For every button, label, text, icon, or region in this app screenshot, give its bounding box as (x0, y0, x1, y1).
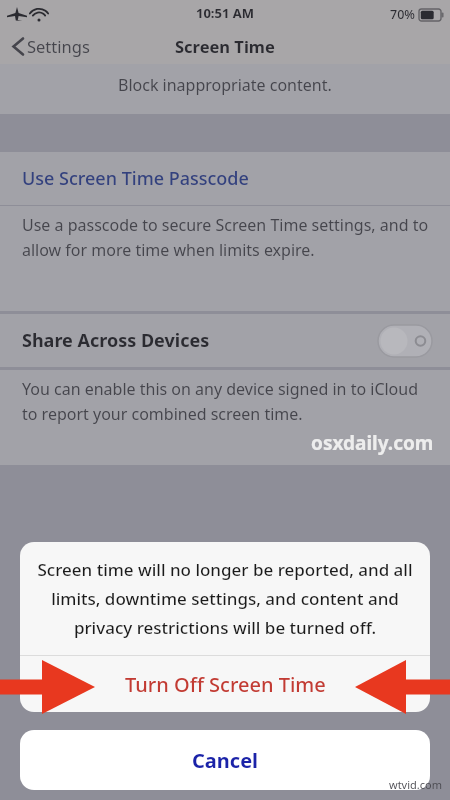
button[interactable]: Use Screen Time Passcode (0, 152, 450, 205)
staticText: 10:51 AM (196, 4, 255, 22)
staticText: Screen Time (175, 35, 275, 57)
button[interactable]: Share Across Devices toggle, off (378, 325, 432, 357)
staticText: Use Screen Time Passcode (22, 166, 249, 191)
staticText: Block inappropriate content. (118, 74, 332, 96)
staticText: Cancel (192, 747, 259, 774)
button[interactable]: Settings (0, 31, 100, 61)
staticText: wtvid.com (389, 777, 442, 792)
staticText: osxdaily.com (311, 430, 434, 456)
staticText: Turn Off Screen Time (125, 671, 326, 698)
staticText: Use a passcode to secure Screen Time set… (22, 214, 432, 260)
staticText: 70% (390, 6, 415, 23)
button[interactable]: Cancel (20, 730, 430, 790)
staticText: Settings (27, 35, 90, 57)
button[interactable]: Turn Off Screen Time (20, 656, 430, 712)
staticText: You can enable this on any device signed… (22, 378, 432, 424)
staticText: Turn Off Screen Time (130, 671, 321, 697)
staticText: Screen time will no longer be reported, … (34, 558, 416, 639)
staticText: Share Across Devices (22, 328, 210, 353)
